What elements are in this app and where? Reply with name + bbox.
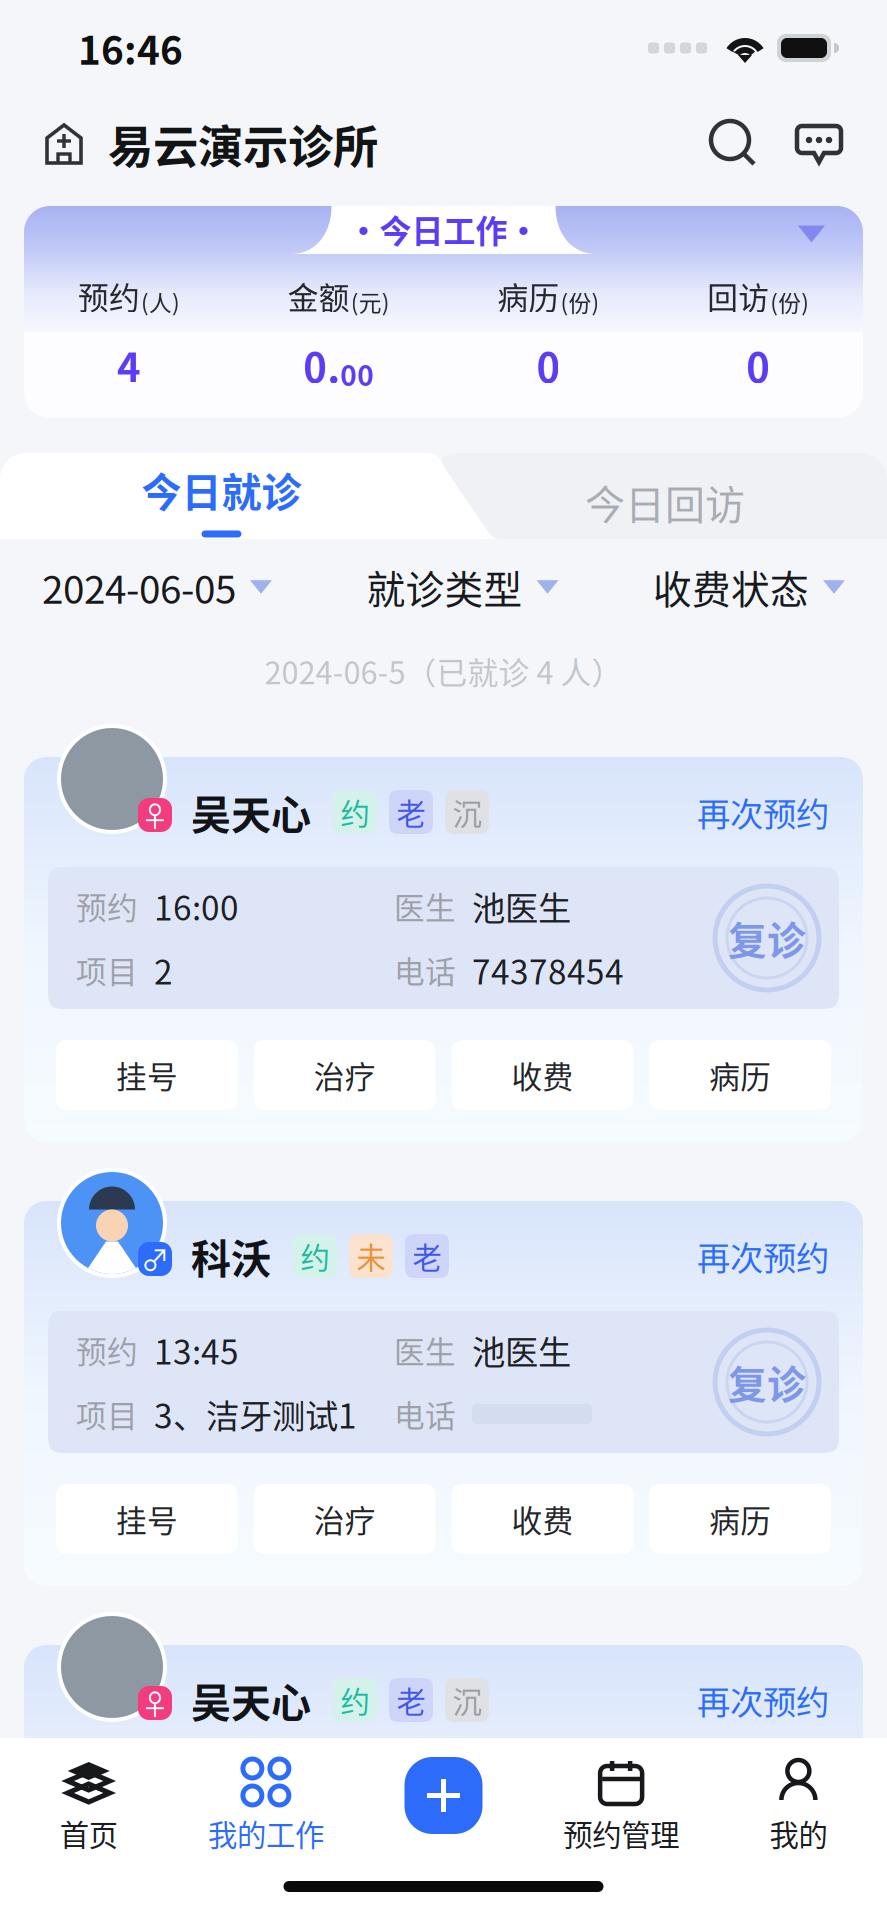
button[interactable]: 就诊类型 [366,559,558,615]
staticText: 池医生 [472,1326,571,1374]
button[interactable]: 2024-06-05 [42,559,272,615]
button[interactable]: 今日回访 [443,453,887,539]
staticText: 约 [340,791,369,833]
staticText: 项目 [76,1836,138,1880]
staticText: 治疗 [314,1497,376,1541]
staticText: 4 [117,336,141,394]
staticText: ♀ [141,1683,169,1723]
staticText: 科沃 [191,1227,271,1285]
button[interactable]: 治疗 [254,1484,436,1554]
staticText: 收费状态 [653,559,809,615]
button[interactable]: 再次预约 [697,1676,829,1724]
staticText: 再次预约 [697,1676,829,1724]
staticText: 74378454 [472,1834,624,1882]
button[interactable]: 再次预约 [697,1232,829,1280]
staticText: 再次预约 [697,1232,829,1280]
staticText: 2024-06-5（已就诊 4 人） [264,649,622,693]
staticText: 复诊 [728,910,806,966]
staticText: 未 [356,1235,385,1277]
staticText: 2024-06-05 [42,559,236,615]
staticText: 老 [396,1679,425,1721]
button[interactable]: 病历 [649,1484,831,1554]
button[interactable]: 病历 [649,1040,831,1110]
staticText: 池医生 [472,882,571,930]
button[interactable]: Add [404,1757,482,1834]
staticText: 病历 [709,1053,771,1097]
staticText: 电话 [394,1392,456,1436]
staticText: 沉 [452,791,481,833]
staticText: 再次预约 [697,788,829,836]
staticText: 16:00 [154,882,239,930]
staticText: 治疗 [314,1053,376,1097]
button[interactable]: 收费 [451,1484,633,1554]
staticText: 2 [154,946,173,994]
staticText: 首页 [60,1812,118,1854]
button[interactable]: 治疗 [254,1040,436,1110]
staticText: 项目 [76,1392,138,1436]
button[interactable]: 我的工作 [177,1758,354,1854]
staticText: 约 [300,1235,329,1277]
staticText: 挂号 [116,1497,178,1541]
staticText: 约 [340,1679,369,1721]
button[interactable]: Search [711,121,757,167]
staticText: 收费 [511,1053,573,1097]
staticText: 0 [746,336,770,394]
staticText: 复诊 [728,1354,806,1410]
staticText: ·今日工作· [347,206,539,252]
staticText: 13:45 [154,1326,239,1374]
staticText: 今日回访 [585,473,745,531]
staticText: 预约管理 [563,1812,679,1854]
staticText: 0. [303,336,340,394]
staticText: (元) [351,285,390,318]
button[interactable]: 首页 [0,1758,177,1854]
staticText: 复诊 [728,1798,806,1854]
staticText: 预约 [76,884,138,928]
staticText: 吴天心 [191,1671,311,1729]
staticText: 00 [340,353,374,394]
staticText: 74378454 [472,946,624,994]
staticText: 挂号 [116,1053,178,1097]
staticText: 16:46 [78,20,183,76]
staticText: (份) [770,285,809,318]
staticText: 我的工作 [208,1812,324,1854]
staticText: 老 [396,791,425,833]
staticText: 项目 [76,948,138,992]
staticText: 医生 [394,1328,456,1372]
staticText: 3、洁牙测试1 [154,1390,357,1438]
staticText: 易云演示诊所 [108,111,378,177]
button[interactable]: Messages [795,122,843,166]
staticText: 医生 [394,1772,456,1816]
staticText: 预约 [76,1772,138,1816]
staticText: 沉 [452,1679,481,1721]
staticText: 就诊类型 [366,559,522,615]
staticText: 电话 [394,948,456,992]
staticText: 病历 [709,1497,771,1541]
button[interactable]: 收费状态 [653,559,845,615]
staticText: 金额 [288,274,350,318]
button[interactable]: 收费 [451,1040,633,1110]
staticText: 老 [412,1235,441,1277]
staticText: 预约 [78,274,140,318]
button[interactable]: 再次预约 [697,788,829,836]
button[interactable]: 挂号 [56,1040,238,1110]
staticText: 吴天心 [191,783,311,841]
staticText: 收费 [511,1497,573,1541]
staticText: 0 [536,336,560,394]
staticText: 回访 [707,274,769,318]
staticText: (份) [560,285,599,318]
staticText: 医生 [394,884,456,928]
staticText: 池医生 [472,1770,571,1818]
staticText: 今日就诊 [141,460,301,518]
button[interactable]: 挂号 [56,1484,238,1554]
button[interactable]: 今日就诊 [0,453,443,539]
staticText: ♂ [141,1239,169,1279]
staticText: ♀ [141,795,169,835]
staticText: 预约 [76,1328,138,1372]
button[interactable]: 我的 [710,1758,887,1854]
button[interactable]: 预约管理 [532,1758,710,1854]
staticText: 病历 [497,274,559,318]
staticText: (人) [141,285,180,318]
